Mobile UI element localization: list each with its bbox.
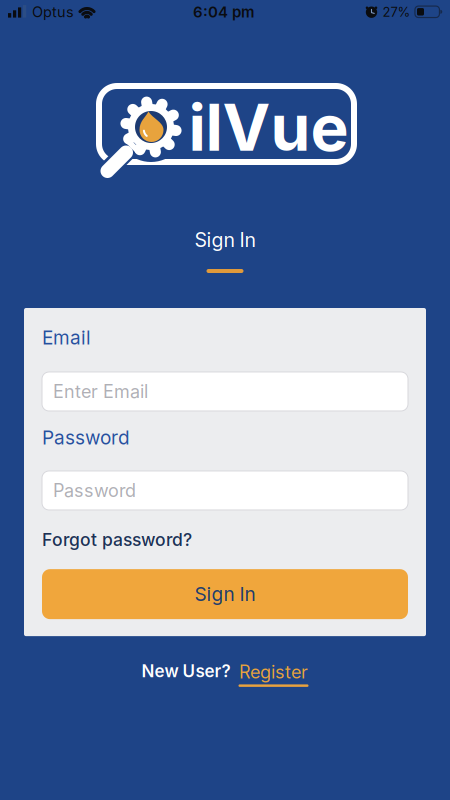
staticText: ilVue [188, 89, 348, 166]
button[interactable]: Forgot password? [42, 529, 192, 550]
staticText: 27% [382, 4, 410, 20]
staticText: Sign In [194, 583, 255, 606]
button[interactable]: Sign In [42, 569, 408, 619]
staticText: New User? [141, 661, 230, 681]
staticText: Password [42, 426, 130, 449]
staticText: Password [53, 480, 136, 501]
staticText: 6:04 pm [193, 3, 255, 21]
staticText: Enter Email [53, 381, 148, 402]
staticText: Optus [32, 3, 74, 21]
staticText: Forgot password? [42, 529, 192, 550]
button[interactable]: Register [238, 661, 308, 687]
staticText: Email [42, 326, 91, 349]
staticText: Register [239, 661, 308, 683]
staticText: Sign In [194, 228, 255, 252]
